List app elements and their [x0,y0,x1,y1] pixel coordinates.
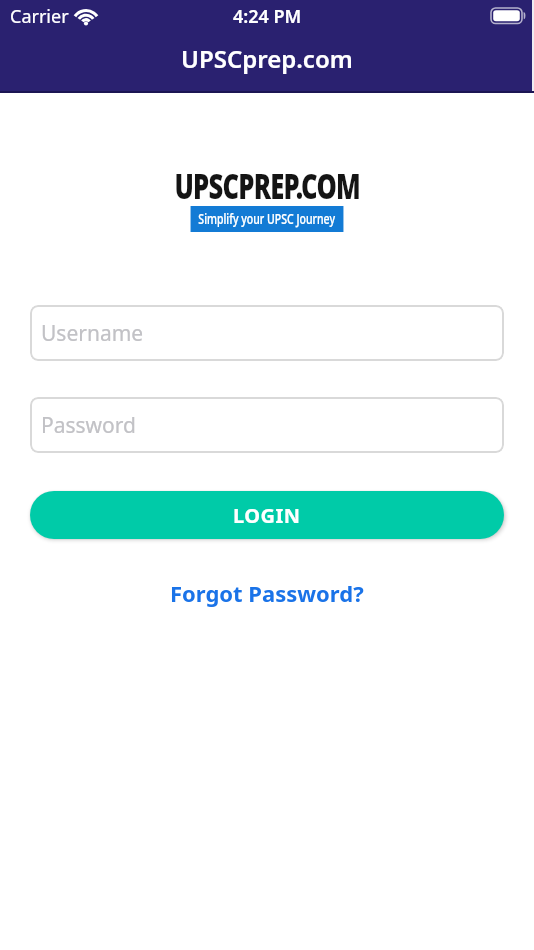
staticText: Username [41,319,144,348]
staticText: Carrier [10,4,69,29]
staticText: LOGIN [233,502,301,529]
button[interactable]: Password [30,397,504,453]
staticText: Forgot Password? [170,578,364,608]
staticText: UPSCPREP.COM [174,162,361,210]
staticText: UPSCprep.com [181,42,353,75]
staticText: Simplify your UPSC Journey [198,210,336,228]
staticText: 4:24 PM [233,4,302,29]
button[interactable]: Username [30,305,504,361]
staticText: Password [41,411,136,440]
button[interactable]: LOGIN [30,491,504,539]
button[interactable]: Forgot Password? [170,578,364,608]
